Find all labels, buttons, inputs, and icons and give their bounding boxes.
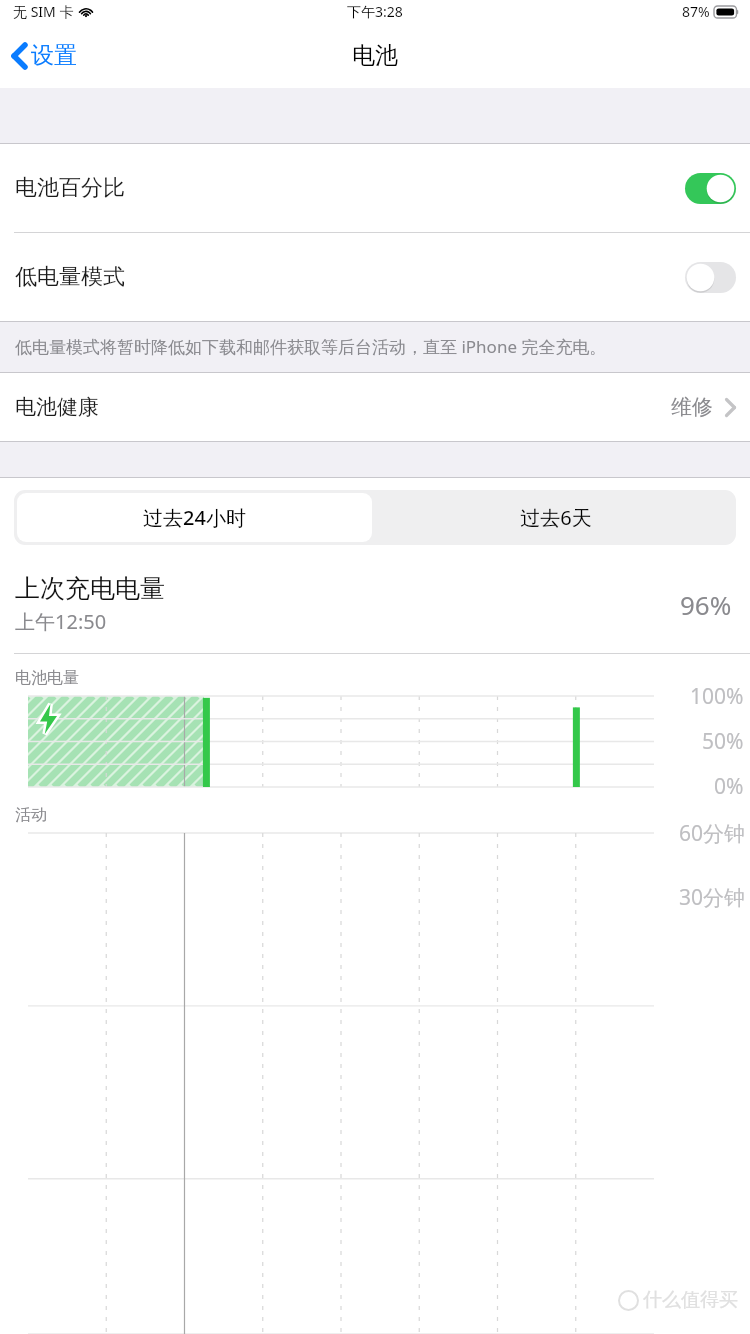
button[interactable]: 电池健康	[0, 373, 750, 441]
staticText: 30分钟	[679, 883, 746, 912]
staticText: 设置	[31, 41, 77, 70]
staticText: 96%	[680, 587, 732, 622]
staticText: 50%	[702, 727, 744, 756]
button[interactable]: 电池百分比	[0, 144, 750, 232]
staticText: 电池健康	[15, 394, 99, 420]
button[interactable]: 过去24小时	[17, 493, 372, 542]
staticText: 电池电量	[15, 668, 79, 688]
staticText: 电池百分比	[15, 174, 125, 202]
staticText: 低电量模式	[15, 263, 125, 291]
staticText: 100%	[690, 682, 744, 711]
staticText: 什么值得买	[643, 1288, 738, 1312]
staticText: 维修	[671, 394, 713, 420]
staticText: 活动	[15, 805, 47, 825]
staticText: 低电量模式将暂时降低如下载和邮件获取等后台活动，直至 iPhone 完全充电。	[15, 335, 607, 358]
staticText: 下午3:28	[347, 2, 403, 21]
button[interactable]: Toggle on	[685, 173, 736, 204]
staticText: 0%	[714, 772, 744, 801]
staticText: 60分钟	[679, 819, 746, 848]
staticText: 上午12:50	[15, 608, 107, 635]
staticText: 过去6天	[520, 504, 592, 531]
button[interactable]: Toggle off	[685, 262, 736, 293]
staticText: 电池	[352, 41, 398, 70]
staticText: 87%	[682, 2, 710, 21]
staticText: 上次充电电量	[15, 573, 165, 604]
staticText: 无 SIM 卡	[13, 2, 74, 21]
button[interactable]: 设置	[0, 35, 87, 76]
staticText: 过去24小时	[143, 504, 246, 531]
button[interactable]: 低电量模式	[0, 233, 750, 321]
button[interactable]: 过去6天	[375, 490, 736, 545]
